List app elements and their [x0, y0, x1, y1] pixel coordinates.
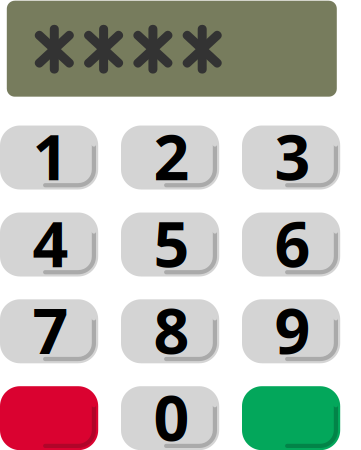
button[interactable]: 5 — [121, 212, 219, 276]
staticText: 9 — [275, 288, 311, 371]
button[interactable]: Enter — [242, 386, 340, 450]
button[interactable]: 6 — [242, 212, 340, 276]
button[interactable]: 7 — [0, 299, 98, 363]
staticText: 3 — [275, 114, 311, 198]
staticText: 6 — [275, 201, 311, 285]
staticText: 2 — [154, 114, 190, 198]
button[interactable]: 9 — [242, 299, 340, 363]
staticText: 8 — [154, 288, 190, 371]
staticText: 5 — [154, 201, 190, 285]
staticText: 4 — [33, 201, 69, 285]
button[interactable]: 0 — [121, 386, 219, 450]
button[interactable]: 2 — [121, 125, 219, 189]
button[interactable]: 8 — [121, 299, 219, 363]
button[interactable]: 1 — [0, 125, 98, 189]
staticText: 7 — [33, 288, 69, 371]
staticText: 1 — [33, 114, 69, 198]
button[interactable]: Cancel — [0, 386, 98, 450]
staticText: 0 — [154, 375, 190, 450]
button[interactable]: 4 — [0, 212, 98, 276]
button[interactable]: 3 — [242, 125, 340, 189]
